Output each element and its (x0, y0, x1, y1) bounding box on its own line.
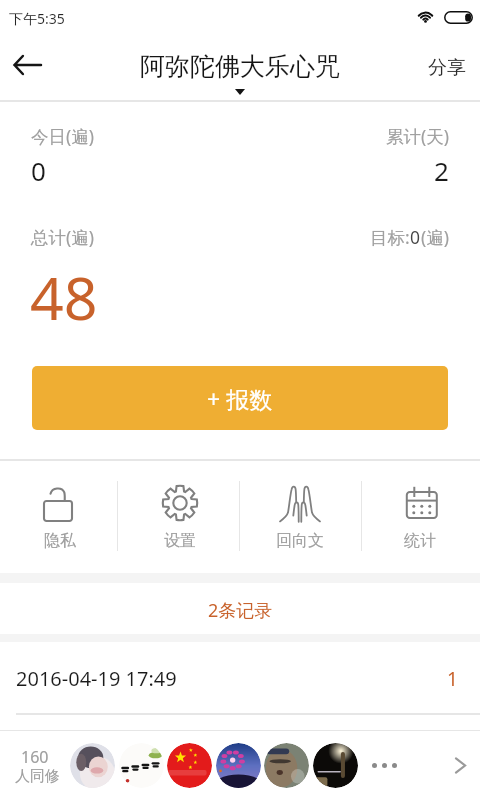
button[interactable]: 隐私 (1, 462, 119, 572)
button[interactable]: 2016-04-19 17:49 (0, 643, 480, 714)
button[interactable]: See all (438, 743, 480, 787)
staticText: 累计(天) (386, 124, 449, 148)
staticText: 分享 (428, 56, 466, 80)
button[interactable]: 160 (0, 731, 480, 800)
staticText: 2016-04-19 17:49 (16, 665, 177, 692)
staticText: 统计 (404, 531, 436, 551)
staticText: 隐私 (44, 531, 76, 551)
button[interactable]: More (362, 743, 406, 787)
button[interactable]: 分享 (414, 34, 480, 96)
button[interactable]: 阿弥陀佛大乐心咒 (135, 44, 345, 100)
staticText: 1 (447, 666, 458, 692)
staticText: 0 (31, 153, 46, 188)
staticText: 0 (410, 225, 421, 249)
staticText: 2 (434, 153, 449, 188)
staticText: + 报数 (207, 383, 273, 414)
staticText: (遍) (421, 225, 449, 249)
staticText: 2条记录 (208, 598, 273, 623)
staticText: 人同修 (15, 767, 60, 786)
button[interactable]: Back (2, 40, 52, 90)
button[interactable]: 2条记录 (0, 583, 480, 637)
staticText: 今日(遍) (31, 124, 94, 148)
staticText: 回向文 (276, 531, 324, 551)
button[interactable]: 回向文 (241, 462, 359, 572)
staticText: 48 (30, 257, 98, 337)
button[interactable]: + 报数 (32, 366, 448, 430)
staticText: 目标: (370, 225, 410, 249)
button[interactable]: 设置 (121, 462, 239, 572)
button[interactable]: 统计 (361, 462, 479, 572)
staticText: 总计(遍) (31, 225, 94, 249)
staticText: 下午5:35 (9, 9, 65, 28)
staticText: 阿弥陀佛大乐心咒 (140, 51, 340, 82)
staticText: 160 (21, 746, 49, 768)
staticText: 设置 (164, 531, 196, 551)
